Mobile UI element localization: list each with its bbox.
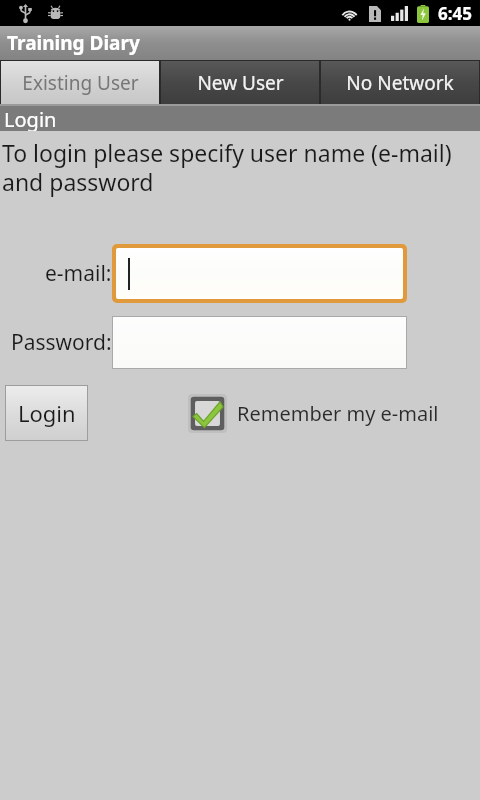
button[interactable]: Login — [5, 385, 88, 441]
staticText: Training Diary — [7, 30, 140, 56]
staticText: Login — [4, 106, 57, 131]
staticText: e-mail: — [45, 259, 112, 288]
staticText: Remember my e-mail — [237, 400, 439, 427]
other: Remember my e-mail checkbox — [188, 394, 227, 433]
staticText: Password: — [11, 328, 112, 357]
staticText: No Network — [346, 70, 454, 96]
button[interactable] — [116, 248, 403, 299]
staticText: Existing User — [22, 70, 139, 96]
button[interactable]: Remember my e-mail checkbox — [188, 394, 439, 433]
button[interactable]: No Network — [321, 61, 479, 105]
button[interactable]: New User — [161, 61, 319, 105]
staticText: To login please specify user name (e-mai… — [2, 137, 474, 198]
staticText: 6:45 — [438, 2, 472, 25]
button[interactable]: Existing User — [1, 61, 159, 105]
staticText: New User — [197, 70, 284, 96]
staticText: Login — [18, 398, 76, 428]
button[interactable] — [112, 316, 407, 369]
